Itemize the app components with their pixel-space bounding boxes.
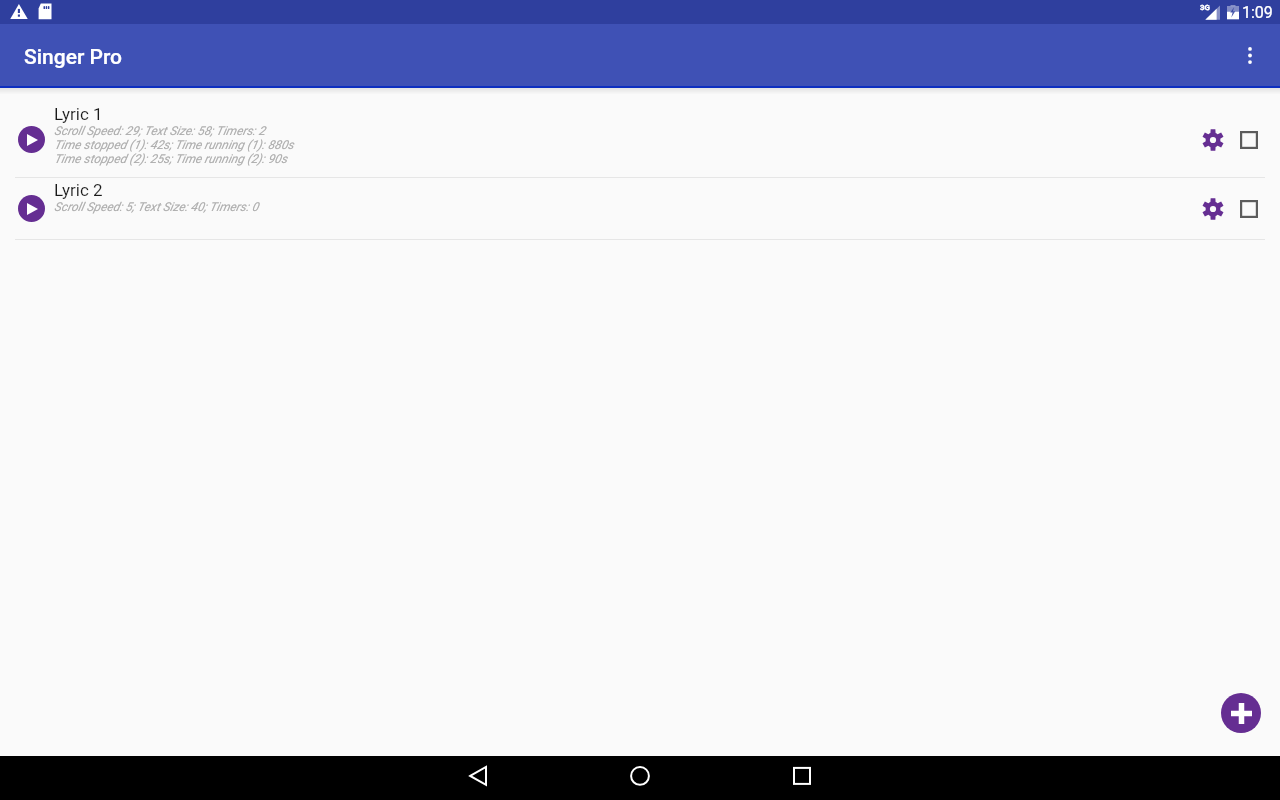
button[interactable]: Settings <box>1193 120 1233 160</box>
button[interactable]: Play <box>18 195 45 222</box>
staticText: Time stopped (2): 25s; Time running (2):… <box>54 152 288 166</box>
button[interactable]: Add new <box>1221 693 1261 733</box>
button[interactable]: Play <box>18 126 45 153</box>
button[interactable]: Recent apps <box>779 756 825 800</box>
staticText: Lyric 1 <box>54 104 103 124</box>
button[interactable]: Play <box>0 88 1280 177</box>
button[interactable]: Select item <box>1231 191 1267 227</box>
staticText: Time stopped (1): 42s; Time running (1):… <box>54 138 294 152</box>
staticText: Lyric 2 <box>54 180 103 200</box>
staticText: 1:09 <box>1242 3 1273 22</box>
staticText: Singer Pro <box>24 45 122 70</box>
button[interactable]: Select item <box>1231 122 1267 158</box>
button[interactable]: More options <box>1232 37 1268 73</box>
staticText: Scroll Speed: 29; Text Size: 58; Timers:… <box>54 124 266 138</box>
button[interactable]: Settings <box>1193 189 1233 229</box>
staticText: 3G <box>1200 3 1210 12</box>
staticText: Scroll Speed: 5; Text Size: 40; Timers: … <box>54 200 259 214</box>
button[interactable]: Back <box>456 756 502 800</box>
button[interactable]: Home <box>617 756 663 800</box>
button[interactable]: Play <box>0 178 1280 239</box>
